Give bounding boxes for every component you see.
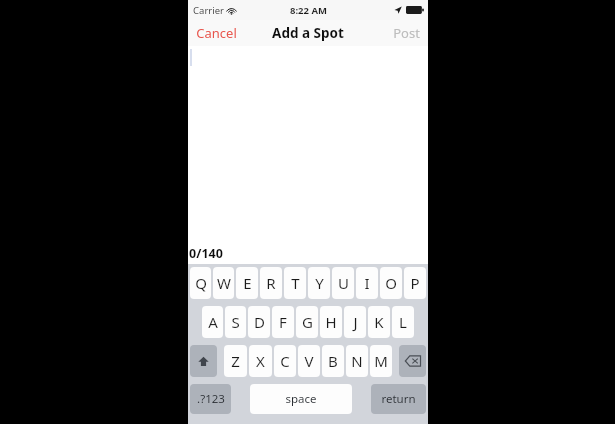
staticText: Add a Spot xyxy=(272,24,344,42)
staticText: P xyxy=(410,273,420,293)
staticText: U xyxy=(338,273,349,293)
staticText: C xyxy=(280,351,290,371)
staticText: O xyxy=(385,273,397,293)
button[interactable]: Y xyxy=(308,267,330,299)
staticText: D xyxy=(254,312,265,332)
staticText: A xyxy=(208,312,218,332)
staticText: Post xyxy=(393,24,420,42)
staticText: V xyxy=(304,351,314,371)
button[interactable]: Z xyxy=(224,345,247,377)
staticText: .?123 xyxy=(197,391,225,407)
button[interactable]: Shift xyxy=(190,345,217,377)
staticText: F xyxy=(279,312,287,332)
button[interactable]: E xyxy=(236,267,258,299)
button[interactable]: Post xyxy=(385,20,428,46)
staticText: G xyxy=(302,312,313,332)
staticText: return xyxy=(381,391,416,407)
button[interactable]: O xyxy=(380,267,402,299)
staticText: I xyxy=(364,273,370,293)
button[interactable]: W xyxy=(213,267,234,299)
staticText: Z xyxy=(231,351,240,371)
button[interactable]: F xyxy=(272,306,294,338)
staticText: J xyxy=(353,312,358,332)
staticText: L xyxy=(399,312,407,332)
staticText: X xyxy=(256,351,265,371)
button[interactable]: T xyxy=(284,267,306,299)
staticText: T xyxy=(291,273,300,293)
button[interactable]: L xyxy=(392,306,414,338)
button[interactable]: D xyxy=(248,306,270,338)
button[interactable]: R xyxy=(260,267,282,299)
button[interactable]: H xyxy=(320,306,342,338)
button[interactable]: A xyxy=(202,306,223,338)
button[interactable]: N xyxy=(346,345,368,377)
button[interactable]: return xyxy=(371,384,426,414)
button[interactable]: 0/140 xyxy=(188,46,428,264)
staticText: S xyxy=(231,312,240,332)
staticText: 8:22 AM xyxy=(290,4,327,17)
button[interactable]: K xyxy=(368,306,390,338)
staticText: 0/140 xyxy=(189,245,223,262)
staticText: R xyxy=(266,273,276,293)
staticText: Q xyxy=(195,273,207,293)
button[interactable]: P xyxy=(404,267,426,299)
button[interactable]: I xyxy=(356,267,378,299)
button[interactable]: .?123 xyxy=(190,384,231,414)
staticText: H xyxy=(325,312,337,332)
button[interactable]: J xyxy=(344,306,366,338)
button[interactable]: Cancel xyxy=(188,20,245,46)
staticText: K xyxy=(374,312,384,332)
button[interactable]: Q xyxy=(190,267,211,299)
staticText: space xyxy=(285,391,317,407)
button[interactable]: U xyxy=(332,267,354,299)
button[interactable]: S xyxy=(225,306,246,338)
button[interactable]: C xyxy=(274,345,296,377)
button[interactable]: V xyxy=(298,345,320,377)
button[interactable]: Backspace xyxy=(399,345,426,377)
button[interactable]: space xyxy=(250,384,352,414)
staticText: Y xyxy=(315,273,324,293)
staticText: Carrier xyxy=(193,4,224,17)
staticText: M xyxy=(374,351,388,371)
staticText: W xyxy=(217,273,231,293)
button[interactable]: G xyxy=(296,306,318,338)
staticText: N xyxy=(351,351,363,371)
button[interactable]: M xyxy=(370,345,392,377)
staticText: E xyxy=(243,273,252,293)
button[interactable]: X xyxy=(249,345,272,377)
staticText: Cancel xyxy=(196,24,237,42)
staticText: B xyxy=(328,351,338,371)
button[interactable]: B xyxy=(322,345,344,377)
